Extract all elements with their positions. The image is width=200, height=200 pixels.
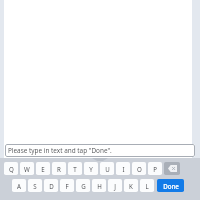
button[interactable]: W [20,162,34,175]
staticText: H [97,182,102,190]
button[interactable]: Backspace [164,162,180,175]
staticText: S [33,182,37,190]
staticText: G [81,182,86,190]
staticText: Done [163,182,179,190]
button[interactable]: A [12,179,26,192]
staticText: Please type in text and tap "Done". [8,146,112,155]
button[interactable]: Please type in text and tap "Done". [5,144,195,157]
staticText: J [114,182,116,190]
button[interactable]: D [44,179,58,192]
button[interactable]: L [140,179,154,192]
button[interactable]: Q [4,162,18,175]
staticText: P [153,165,157,173]
button[interactable]: K [124,179,138,192]
button[interactable]: E [36,162,50,175]
staticText: R [57,165,61,173]
button[interactable]: P [148,162,162,175]
staticText: L [145,182,149,190]
button[interactable]: O [132,162,146,175]
staticText: A [17,182,21,190]
button[interactable]: J [108,179,122,192]
staticText: O [137,165,142,173]
staticText: Y [89,165,93,173]
button[interactable]: T [68,162,82,175]
button[interactable]: I [116,162,130,175]
staticText: E [41,165,45,173]
button[interactable]: H [92,179,106,192]
button[interactable]: U [100,162,114,175]
staticText: K [129,182,133,190]
staticText: U [105,165,110,173]
button[interactable]: G [76,179,90,192]
button[interactable]: Done [157,179,184,192]
staticText: I [122,165,125,173]
button[interactable]: R [52,162,66,175]
button[interactable]: Y [84,162,98,175]
button[interactable]: F [60,179,74,192]
staticText: W [24,165,30,173]
staticText: T [73,165,77,173]
staticText: D [49,182,54,190]
staticText: F [65,182,69,190]
staticText: Q [9,165,14,173]
button[interactable]: S [28,179,42,192]
